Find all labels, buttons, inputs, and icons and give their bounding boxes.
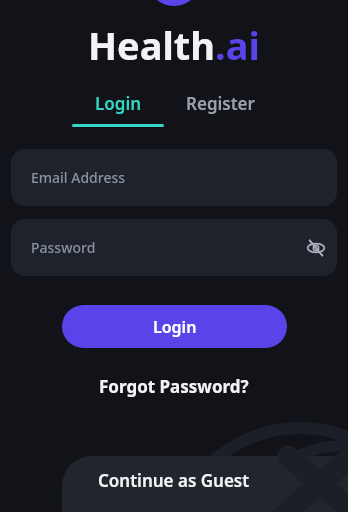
button[interactable]: Forgot Password? [99, 375, 249, 398]
staticText: Health.ai [88, 19, 260, 71]
button[interactable]: Password [11, 219, 337, 276]
button[interactable]: Login [72, 90, 164, 130]
staticText: Login [153, 316, 197, 338]
staticText: Password [31, 238, 96, 257]
button[interactable]: Register [178, 90, 262, 130]
staticText: Register [186, 92, 255, 115]
staticText: Continue as Guest [98, 469, 250, 492]
staticText: Login [95, 92, 142, 115]
button[interactable]: Email Address [11, 149, 337, 206]
staticText: Forgot Password? [99, 375, 249, 398]
staticText: Email Address [31, 168, 126, 187]
button[interactable]: Login [62, 305, 287, 348]
button[interactable] [62, 456, 348, 512]
